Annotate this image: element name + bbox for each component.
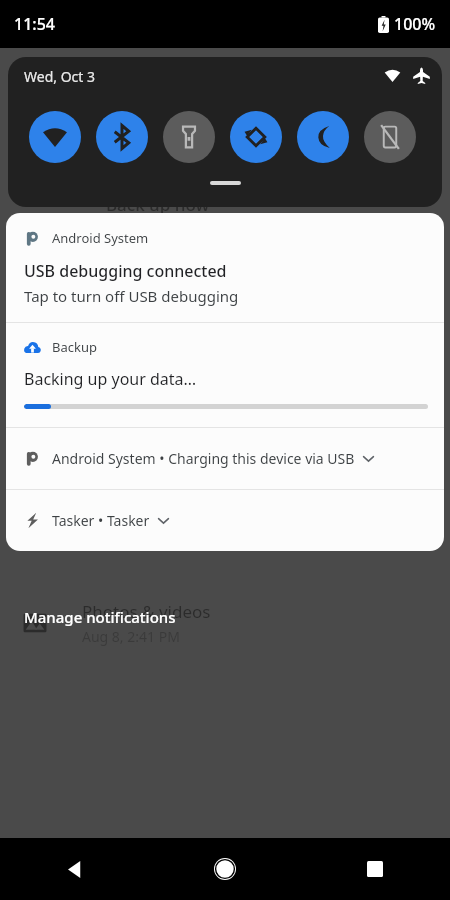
staticText: Backup: [52, 338, 97, 356]
button[interactable]: Recents: [300, 838, 450, 900]
staticText: Manage notifications: [24, 607, 176, 627]
button[interactable]: Bluetooth: [96, 111, 148, 163]
staticText: Wed, Oct 3: [24, 67, 95, 86]
button[interactable]: Manage notifications: [22, 605, 178, 629]
button[interactable]: Device settings: [0, 488, 450, 558]
staticText: USB debugging connected: [24, 260, 227, 282]
button[interactable]: Flashlight: [163, 111, 215, 163]
button[interactable]: Mute: [364, 111, 416, 163]
button[interactable]: Wi-Fi: [29, 111, 81, 163]
staticText: 10 hours ago, 1:18 PM: [82, 427, 229, 446]
button[interactable]: Contacts: [0, 388, 450, 458]
staticText: Android System: [52, 229, 149, 247]
button[interactable]: Back: [0, 838, 150, 900]
button[interactable]: Android System: [6, 213, 444, 322]
staticText: Tap to turn off USB debugging: [24, 286, 239, 306]
staticText: Backing up your data…: [24, 368, 197, 390]
button[interactable]: Photos & videos: [0, 588, 450, 658]
button[interactable]: Expand quick settings: [200, 171, 251, 195]
staticText: Photos & videos: [82, 600, 211, 623]
staticText: 100%: [394, 13, 436, 35]
staticText: Tasker • Tasker: [52, 511, 150, 530]
staticText: 11:54: [14, 13, 55, 35]
button[interactable]: Auto-rotate: [230, 111, 282, 163]
staticText: Contacts: [82, 400, 152, 423]
button[interactable]: Do not disturb: [297, 111, 349, 163]
staticText: Back up now: [106, 193, 210, 216]
staticText: Aug 8, 2:41 PM: [82, 627, 180, 646]
staticText: Android System • Charging this device vi…: [52, 449, 355, 468]
button[interactable]: Backup: [6, 323, 444, 427]
button[interactable]: Home: [150, 838, 300, 900]
button[interactable]: Tasker • Tasker: [6, 490, 444, 551]
button[interactable]: Android System • Charging this device vi…: [6, 428, 444, 489]
staticText: Device settings: [82, 500, 203, 523]
